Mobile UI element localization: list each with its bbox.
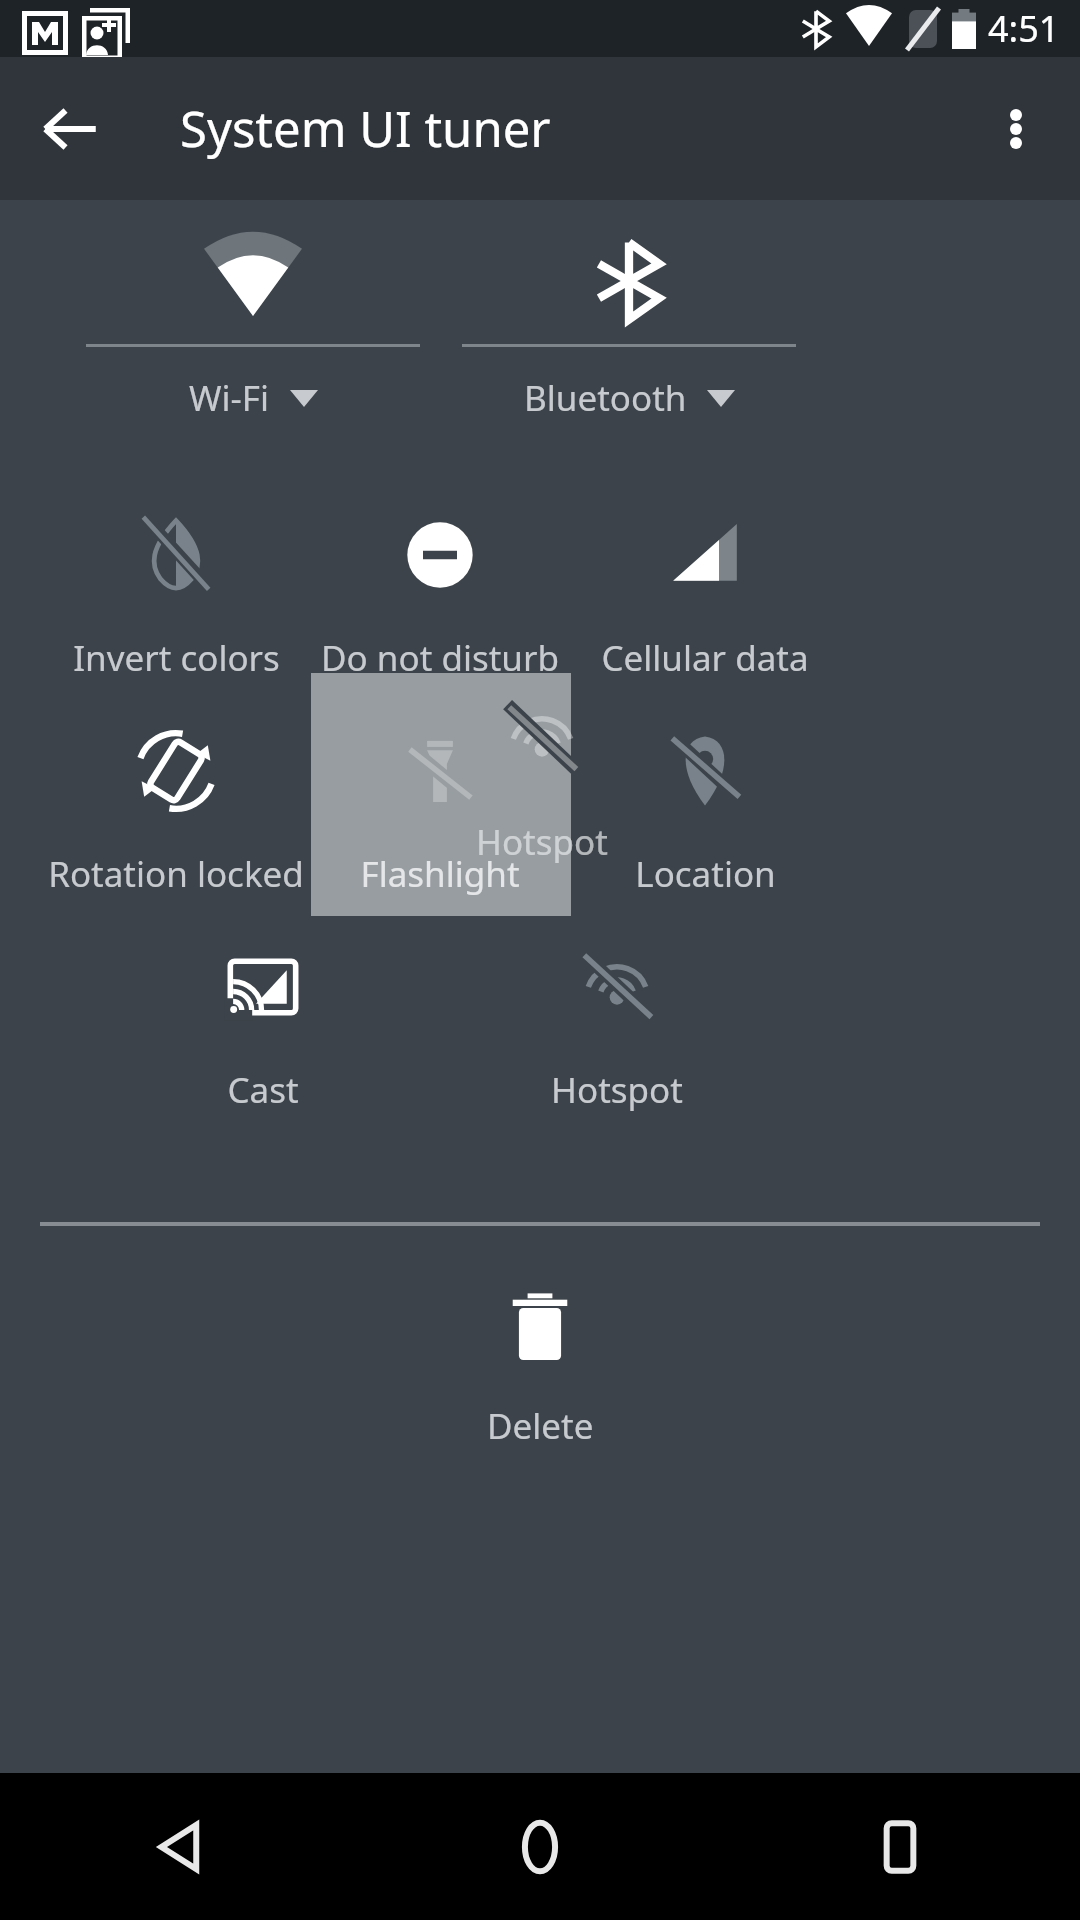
staticText: Cellular data <box>601 634 809 682</box>
button[interactable]: Cellular data <box>552 500 858 700</box>
staticText: Cast <box>227 1066 299 1114</box>
button[interactable]: Home <box>360 1773 720 1920</box>
staticText: Bluetooth <box>524 374 687 422</box>
staticText: Invert colors <box>73 634 280 682</box>
button[interactable]: Rotation locked <box>23 716 329 916</box>
staticText: 4:51 <box>988 4 1060 53</box>
button[interactable]: Cast <box>110 932 416 1132</box>
button[interactable]: Recent apps <box>720 1773 1080 1920</box>
staticText: Hotspot <box>476 818 608 866</box>
button[interactable]: Location <box>552 716 858 916</box>
staticText: Location <box>635 850 776 898</box>
staticText: Wi-Fi <box>189 374 270 422</box>
button[interactable]: Delete <box>390 1278 690 1468</box>
button[interactable]: Invert colors <box>23 500 329 700</box>
button[interactable]: Flashlight <box>287 716 593 916</box>
button[interactable]: Bluetooth <box>462 222 796 422</box>
staticText: Delete <box>487 1402 594 1450</box>
staticText: Do not disturb <box>321 634 559 682</box>
button[interactable]: More options <box>970 83 1062 175</box>
button[interactable]: Back <box>0 1773 360 1920</box>
button[interactable]: Do not disturb <box>287 500 593 700</box>
staticText: System UI tuner <box>180 95 551 162</box>
button[interactable]: Back <box>24 83 116 175</box>
staticText: Hotspot <box>551 1066 683 1114</box>
staticText: Flashlight <box>360 850 520 898</box>
button[interactable]: Wi-Fi <box>86 222 420 422</box>
staticText: Rotation locked <box>48 850 304 898</box>
button[interactable]: Hotspot <box>464 932 770 1132</box>
